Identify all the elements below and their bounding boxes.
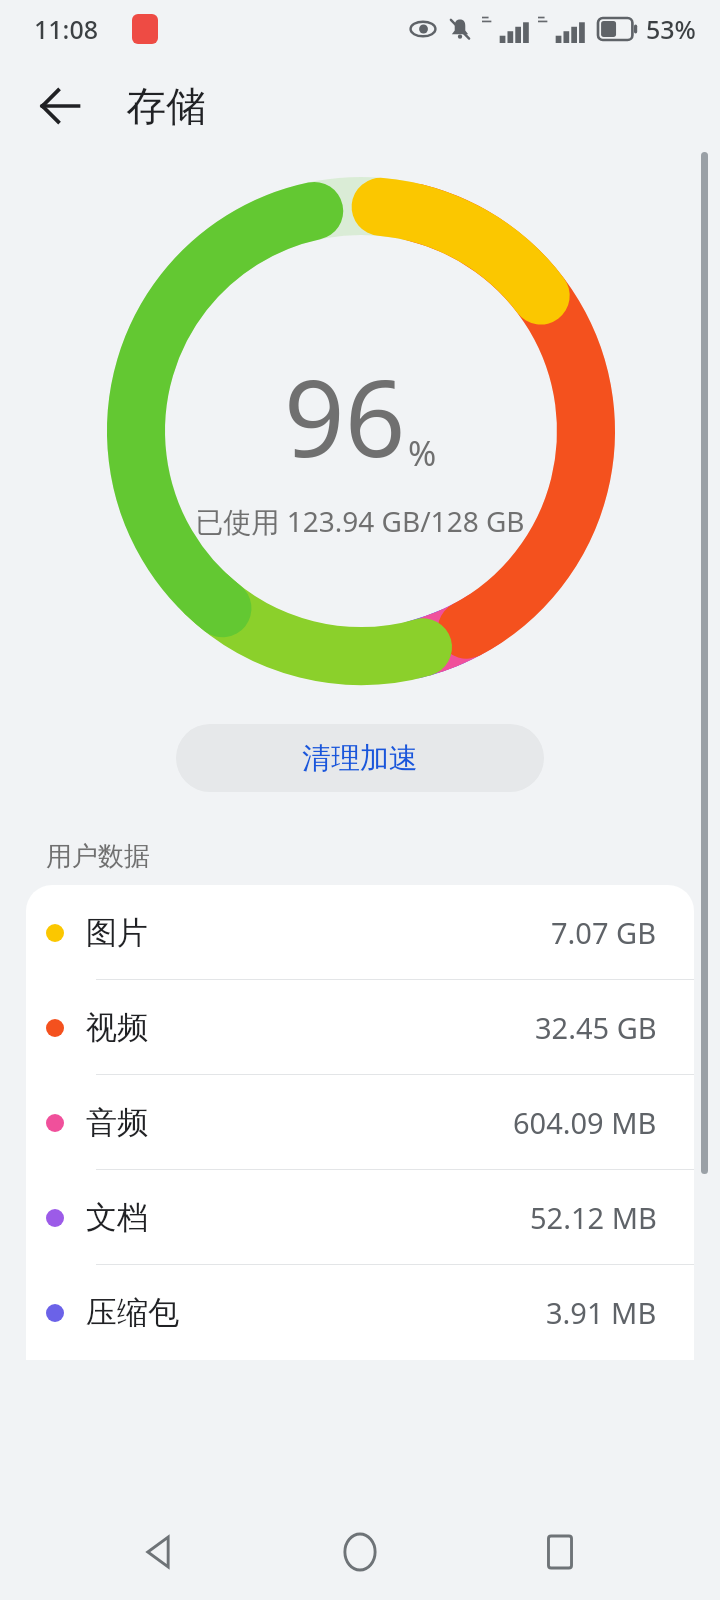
button[interactable]: Back — [22, 68, 98, 144]
staticText: 3.91 MB — [546, 1293, 657, 1332]
button[interactable]: 音频 — [26, 1075, 694, 1170]
button[interactable]: Recents — [520, 1512, 600, 1592]
button[interactable]: 清理加速 — [176, 724, 544, 792]
button[interactable]: 图片 — [26, 885, 694, 980]
staticText: 53% — [646, 12, 696, 46]
staticText: 604.09 MB — [513, 1103, 657, 1142]
button[interactable]: 视频 — [26, 980, 694, 1075]
staticText: 文档 — [86, 1198, 148, 1237]
staticText: 存储 — [126, 81, 206, 131]
button[interactable]: Home — [320, 1512, 400, 1592]
staticText: 11:08 — [34, 12, 99, 46]
staticText: 音频 — [86, 1103, 148, 1142]
staticText: 7.07 GB — [551, 913, 657, 952]
staticText: 压缩包 — [86, 1293, 179, 1332]
staticText: 视频 — [86, 1008, 148, 1047]
staticText: 52.12 MB — [530, 1198, 657, 1237]
button[interactable]: 压缩包 — [26, 1265, 694, 1360]
button[interactable]: 文档 — [26, 1170, 694, 1265]
staticText: 图片 — [86, 913, 148, 952]
staticText: 32.45 GB — [535, 1008, 657, 1047]
staticText: 已使用 123.94 GB/128 GB — [195, 502, 525, 540]
staticText: 清理加速 — [302, 740, 418, 777]
staticText: 96 — [284, 344, 406, 488]
button[interactable]: Back — [120, 1512, 200, 1592]
staticText: % — [408, 430, 437, 476]
staticText: 用户数据 — [46, 840, 150, 873]
